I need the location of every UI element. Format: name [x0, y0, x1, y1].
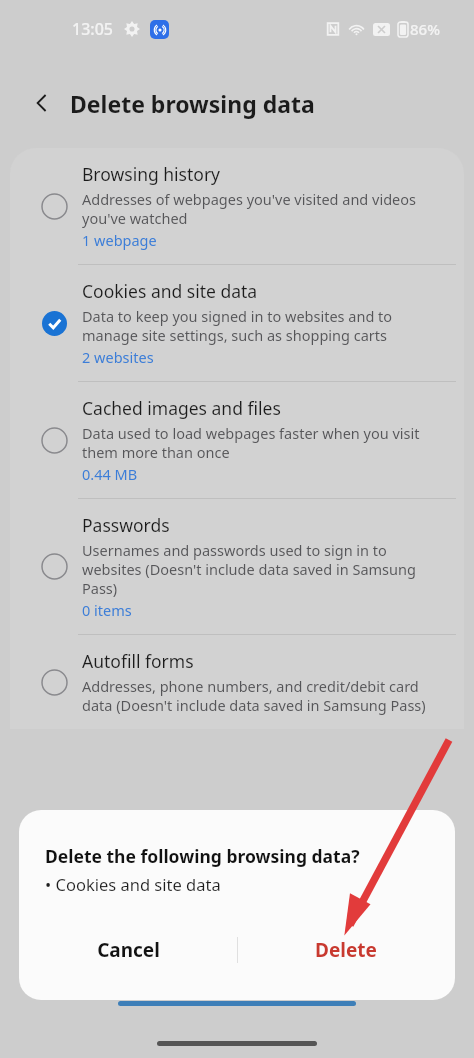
- staticText: Browsing history: [82, 162, 221, 186]
- staticText: 1 webpage: [82, 230, 157, 250]
- staticText: Passwords: [82, 513, 170, 537]
- staticText: • Cookies and site data: [45, 873, 221, 895]
- staticText: Data to keep you signed in to websites a…: [82, 306, 450, 345]
- button[interactable]: Browsing history: [10, 148, 464, 264]
- staticText: 2 websites: [82, 347, 154, 367]
- staticText: 86%: [410, 19, 440, 39]
- staticText: Addresses of webpages you've visited and…: [82, 189, 450, 228]
- button[interactable]: Cancel: [19, 914, 237, 986]
- staticText: Cached images and files: [82, 396, 281, 420]
- staticText: Usernames and passwords used to sign in …: [82, 540, 450, 598]
- staticText: 0 items: [82, 600, 132, 620]
- staticText: Cancel: [97, 937, 160, 963]
- button[interactable]: Cached images and files: [10, 382, 464, 498]
- staticText: Addresses, phone numbers, and credit/deb…: [82, 676, 450, 715]
- button[interactable]: Autofill forms: [10, 635, 464, 729]
- button[interactable]: Delete: [237, 914, 455, 986]
- staticText: Cookies and site data: [82, 279, 258, 303]
- button[interactable]: Cookies and site data: [10, 265, 464, 381]
- staticText: Delete the following browsing data?: [45, 844, 360, 868]
- staticText: Delete browsing data: [70, 88, 315, 119]
- staticText: Delete: [315, 937, 377, 963]
- staticText: 0.44 MB: [82, 464, 138, 484]
- staticText: Autofill forms: [82, 649, 194, 673]
- button[interactable]: Back: [22, 83, 62, 123]
- staticText: Data used to load webpages faster when y…: [82, 423, 450, 462]
- staticText: 13:05: [72, 18, 113, 40]
- button[interactable]: Passwords: [10, 499, 464, 634]
